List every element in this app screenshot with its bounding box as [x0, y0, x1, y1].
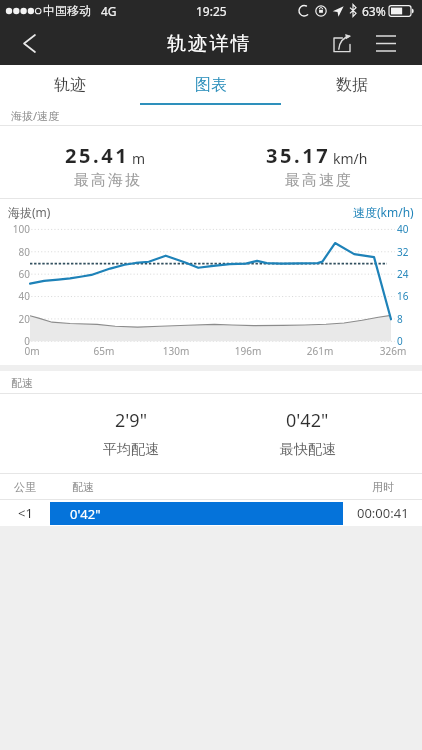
staticText: 海拔(m) — [8, 204, 51, 220]
staticText: 80 — [4, 245, 30, 259]
button[interactable]: 轨迹 — [0, 65, 140, 105]
button[interactable]: 图表 — [140, 65, 281, 105]
staticText: 海拔/速度 — [11, 108, 60, 123]
staticText: 配速 — [72, 480, 94, 494]
staticText: 轨迹详情 — [167, 32, 252, 56]
staticText: 最高速度 — [284, 171, 352, 190]
staticText: 19:25 — [196, 3, 227, 19]
staticText: 32 — [397, 245, 409, 259]
staticText: 65m — [84, 344, 124, 358]
staticText: 60 — [4, 267, 30, 281]
staticText: <1 — [18, 504, 33, 522]
button[interactable]: 数据 — [281, 65, 422, 105]
staticText: 速度(km/h) — [353, 204, 414, 220]
staticText: km/h — [333, 149, 368, 168]
button[interactable]: <1 — [0, 500, 422, 526]
staticText: 24 — [397, 267, 409, 281]
button[interactable]: Menu — [365, 22, 407, 65]
staticText: 数据 — [336, 75, 368, 95]
staticText: 0'42" — [70, 505, 101, 523]
staticText: 130m — [156, 344, 196, 358]
staticText: 轨迹 — [54, 75, 86, 95]
staticText: 00:00:41 — [357, 504, 409, 522]
staticText: 63% — [362, 3, 386, 19]
staticText: 0m — [12, 344, 52, 358]
staticText: 261m — [300, 344, 340, 358]
staticText: 35.17 — [266, 142, 331, 169]
staticText: 40 — [4, 289, 30, 303]
staticText: 20 — [4, 312, 30, 326]
staticText: 0'42" — [286, 408, 329, 433]
staticText: 4G — [101, 3, 117, 19]
staticText: 0 — [4, 334, 30, 348]
staticText: m — [132, 149, 146, 168]
staticText: 配速 — [11, 376, 33, 390]
staticText: 100 — [4, 222, 30, 236]
staticText: 40 — [397, 222, 409, 236]
staticText: 8 — [397, 312, 403, 326]
staticText: 最高海拔 — [73, 171, 141, 190]
staticText: 196m — [228, 344, 268, 358]
staticText: 2'9" — [115, 408, 147, 433]
staticText: 平均配速 — [103, 441, 159, 459]
staticText: 图表 — [195, 75, 227, 95]
staticText: 最快配速 — [280, 441, 336, 459]
staticText: 16 — [397, 289, 409, 303]
staticText: 公里 — [14, 480, 36, 494]
staticText: 0 — [397, 334, 403, 348]
button[interactable]: Back — [0, 22, 48, 65]
staticText: 用时 — [372, 480, 394, 494]
staticText: 25.41 — [65, 142, 130, 169]
staticText: 中国移动 — [43, 3, 91, 18]
staticText: 326m — [373, 344, 413, 358]
button[interactable]: Share — [321, 22, 363, 65]
